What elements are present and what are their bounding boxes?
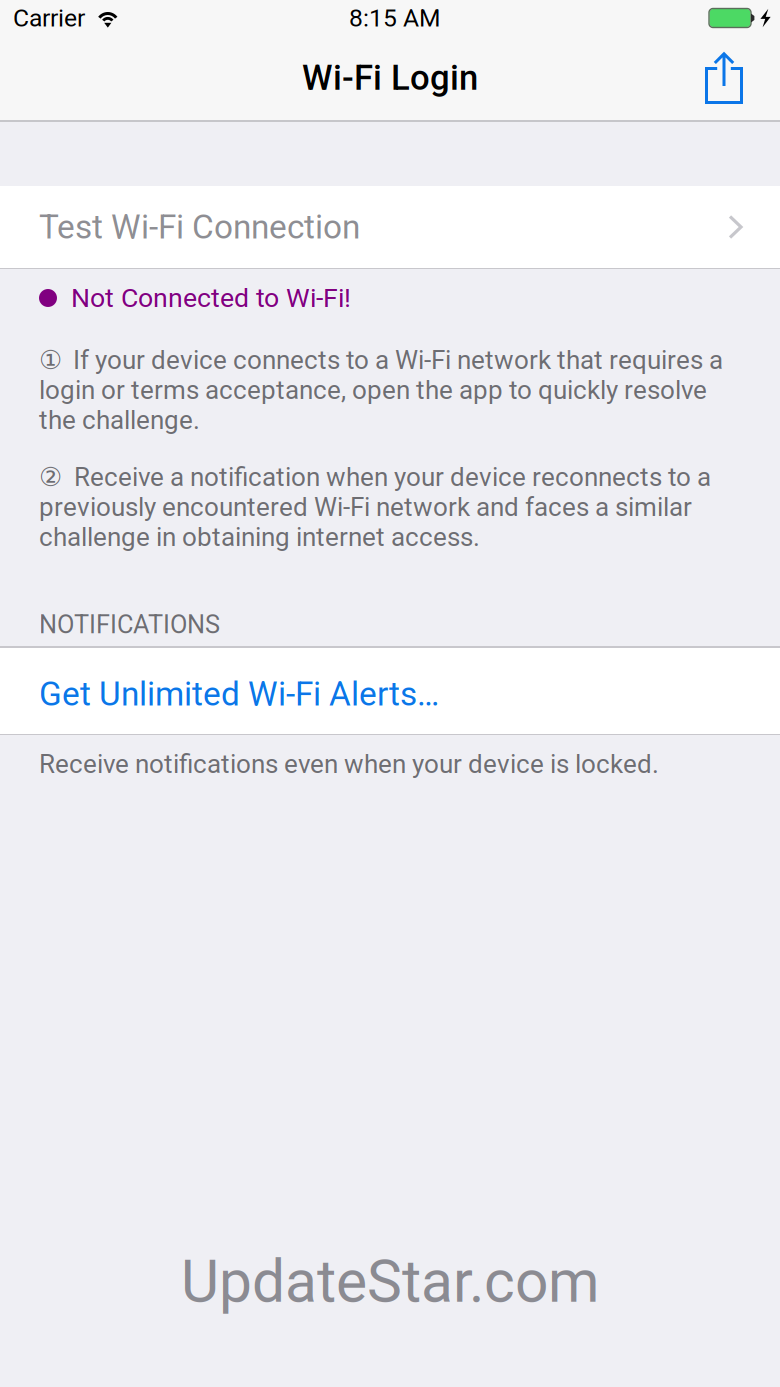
staticText: Test Wi-Fi Connection	[39, 207, 360, 247]
button[interactable]: Test Wi-Fi Connection	[0, 186, 780, 268]
staticText: NOTIFICATIONS	[39, 610, 220, 639]
staticText: Wi-Fi Login	[302, 58, 478, 98]
staticText: Get Unlimited Wi-Fi Alerts…	[39, 674, 439, 714]
staticText: UpdateStar.com	[181, 1247, 599, 1316]
staticText: previously encountered Wi-Fi network and…	[39, 492, 692, 522]
staticText: ① If your device connects to a Wi-Fi net…	[39, 345, 723, 375]
staticText: Receive notifications even when your dev…	[39, 749, 659, 779]
staticText: the challenge.	[39, 405, 200, 435]
staticText: Carrier	[13, 3, 85, 32]
staticText: Not Connected to Wi-Fi!	[71, 282, 351, 314]
staticText: login or terms acceptance, open the app …	[39, 375, 707, 405]
button[interactable]: Get Unlimited Wi-Fi Alerts…	[0, 648, 780, 734]
staticText: ② Receive a notification when your devic…	[39, 462, 711, 492]
staticText: challenge in obtaining internet access.	[39, 522, 480, 552]
button[interactable]: Share	[668, 36, 780, 120]
staticText: 8:15 AM	[349, 3, 441, 32]
